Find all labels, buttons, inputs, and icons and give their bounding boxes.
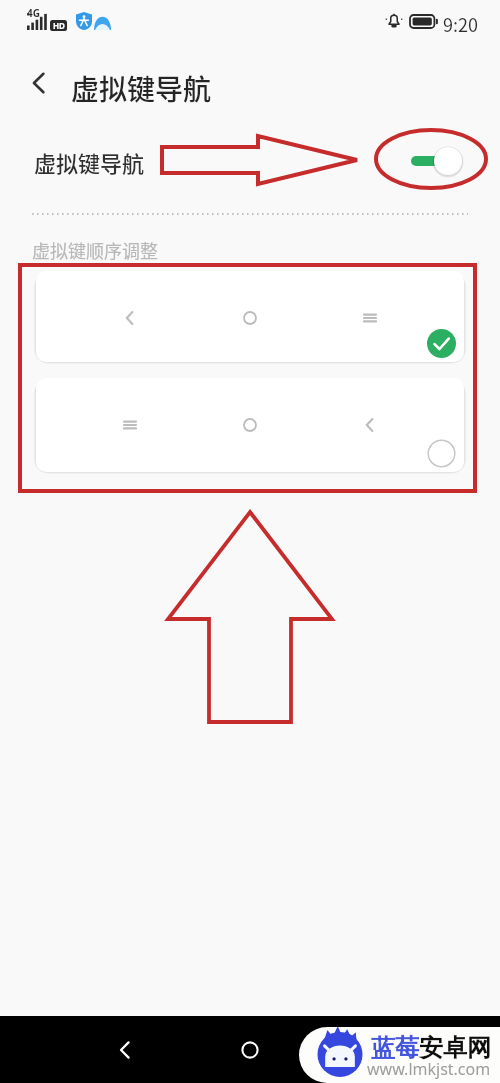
staticText: 安卓网	[419, 1033, 491, 1063]
button[interactable]: Toggle navigation bar	[407, 141, 470, 181]
staticText: 虚拟键导航	[34, 146, 145, 178]
staticText: www.lmkjst.com	[367, 1058, 491, 1080]
staticText: 9:20	[443, 11, 478, 37]
staticText: 虚拟键顺序调整	[32, 237, 158, 263]
staticText: HD	[53, 20, 65, 31]
button[interactable]: 虚拟键导航	[0, 130, 500, 190]
button[interactable]: Home	[229, 1029, 270, 1070]
button[interactable]: Selected	[427, 329, 456, 358]
button[interactable]: Not selected	[427, 439, 456, 468]
staticText: 虚拟键导航	[71, 68, 212, 109]
button[interactable]: Selected	[36, 271, 464, 362]
staticText: 蓝莓	[371, 1033, 419, 1063]
button[interactable]: Back	[18, 63, 60, 103]
staticText: 4G	[27, 6, 40, 20]
button[interactable]: Not selected	[36, 378, 464, 472]
button[interactable]: Back	[104, 1029, 145, 1070]
